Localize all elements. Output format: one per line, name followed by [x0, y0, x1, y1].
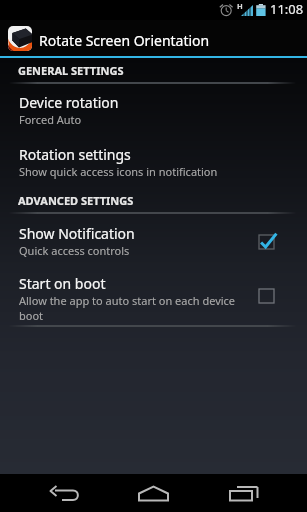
- button[interactable]: Start on boot: [0, 274, 307, 323]
- button[interactable]: Show Notification: [0, 224, 307, 258]
- staticText: Allow the app to auto start on each devi…: [19, 293, 240, 323]
- staticText: Device rotation: [19, 93, 119, 112]
- staticText: ADVANCED SETTINGS: [18, 193, 134, 208]
- button[interactable]: Recent apps: [212, 474, 288, 512]
- staticText: Rotation settings: [19, 145, 131, 164]
- button[interactable]: Home: [115, 474, 191, 512]
- staticText: H: [237, 1, 243, 11]
- staticText: Show quick access icons in notification: [19, 164, 218, 179]
- button[interactable]: Checked: [254, 230, 278, 254]
- staticText: 11:08: [270, 0, 304, 18]
- staticText: Show Notification: [19, 224, 135, 243]
- button[interactable]: Unchecked: [254, 284, 278, 308]
- staticText: Forced Auto: [19, 112, 82, 127]
- staticText: Quick access controls: [19, 243, 130, 258]
- staticText: Start on boot: [19, 274, 106, 293]
- button[interactable]: Device rotation: [0, 93, 307, 127]
- staticText: Rotate Screen Orientation: [39, 31, 210, 50]
- staticText: GENERAL SETTINGS: [18, 63, 124, 78]
- button[interactable]: Back: [18, 474, 94, 512]
- button[interactable]: Rotation settings: [0, 145, 307, 179]
